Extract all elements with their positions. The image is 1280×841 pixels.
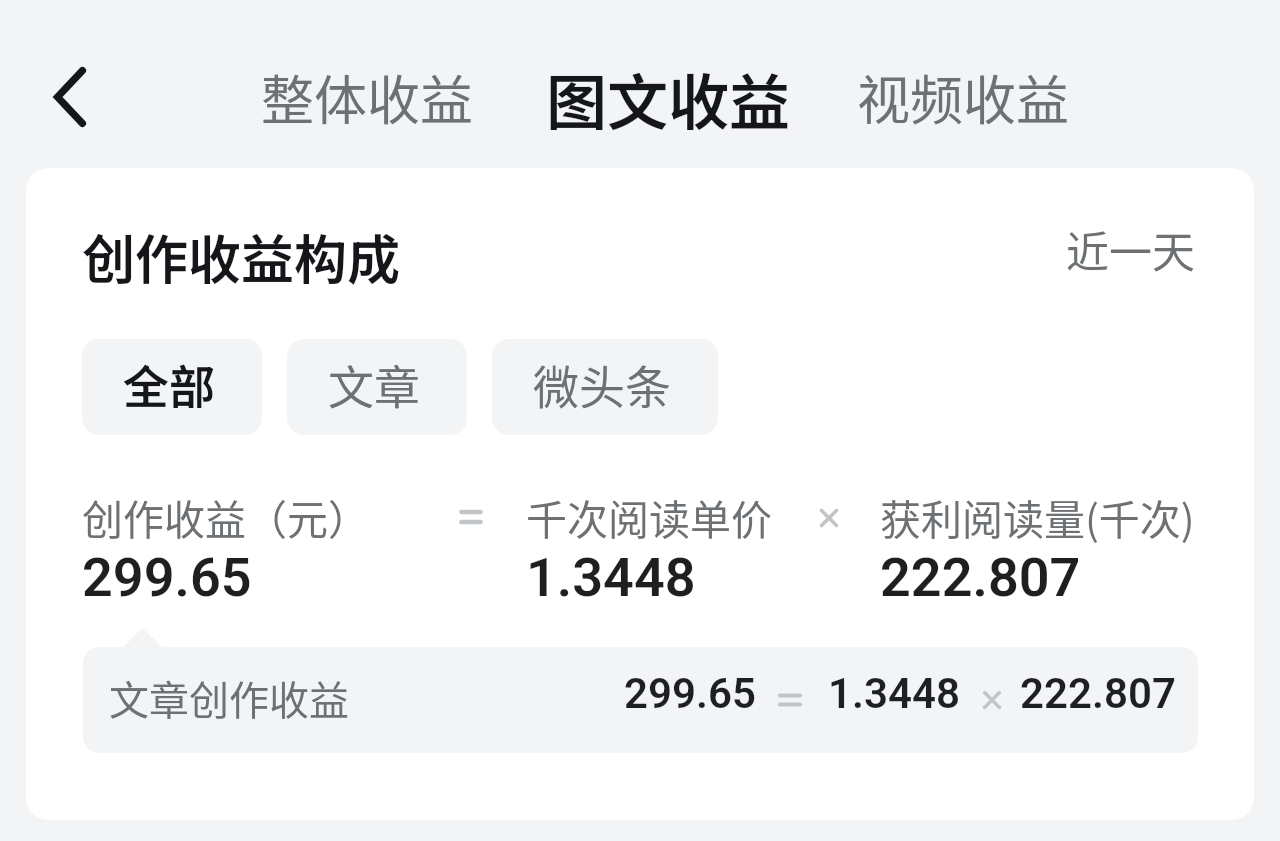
- staticText: 1.3448: [526, 546, 696, 609]
- staticText: 整体收益: [261, 59, 473, 136]
- staticText: 视频收益: [857, 59, 1069, 136]
- button[interactable]: 近一天: [1066, 218, 1195, 280]
- staticText: 222.807: [1020, 669, 1176, 718]
- button[interactable]: 图文收益: [534, 42, 803, 154]
- staticText: 千次阅读单价: [526, 487, 772, 546]
- staticText: 222.807: [880, 546, 1081, 609]
- button[interactable]: 整体收益: [249, 47, 485, 148]
- button[interactable]: 微头条: [492, 339, 718, 435]
- staticText: 创作收益构成: [82, 218, 400, 295]
- button[interactable]: 视频收益: [845, 47, 1081, 148]
- staticText: 创作收益（元）: [82, 487, 369, 546]
- button[interactable]: 全部: [82, 339, 262, 435]
- button[interactable]: Back: [36, 52, 104, 142]
- staticText: 图文收益: [546, 54, 791, 142]
- staticText: 近一天: [1066, 218, 1195, 280]
- staticText: 1.3448: [828, 669, 960, 718]
- staticText: 微头条: [533, 351, 671, 418]
- staticText: 文章创作收益: [109, 669, 349, 727]
- staticText: 文章: [328, 351, 420, 418]
- button[interactable]: 文章: [287, 339, 467, 435]
- staticText: 299.65: [624, 669, 756, 718]
- staticText: 299.65: [82, 546, 252, 609]
- button[interactable]: 文章创作收益: [83, 647, 1198, 753]
- staticText: 全部: [123, 351, 215, 418]
- staticText: 获利阅读量(千次): [880, 487, 1195, 546]
